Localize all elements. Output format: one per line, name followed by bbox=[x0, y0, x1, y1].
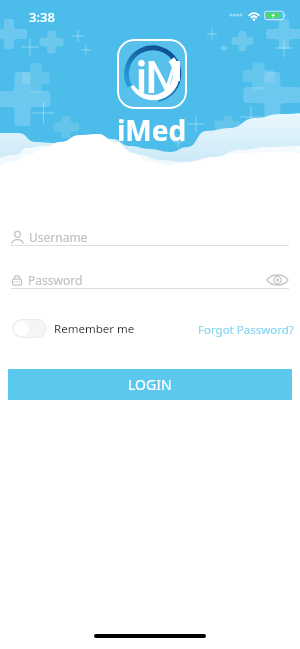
button[interactable]: Remember me bbox=[12, 319, 135, 338]
staticText: Password bbox=[28, 272, 83, 288]
button[interactable]: LOGIN bbox=[8, 369, 292, 400]
button[interactable]: Show password bbox=[265, 271, 289, 289]
staticText: 3:38 bbox=[29, 8, 55, 26]
button[interactable]: Forgot Password? bbox=[198, 322, 294, 338]
staticText: LOGIN bbox=[128, 375, 172, 394]
staticText: iMed bbox=[117, 111, 187, 149]
staticText: Username bbox=[29, 229, 88, 245]
staticText: Remember me bbox=[54, 321, 135, 337]
staticText: Forgot Password? bbox=[198, 322, 294, 338]
